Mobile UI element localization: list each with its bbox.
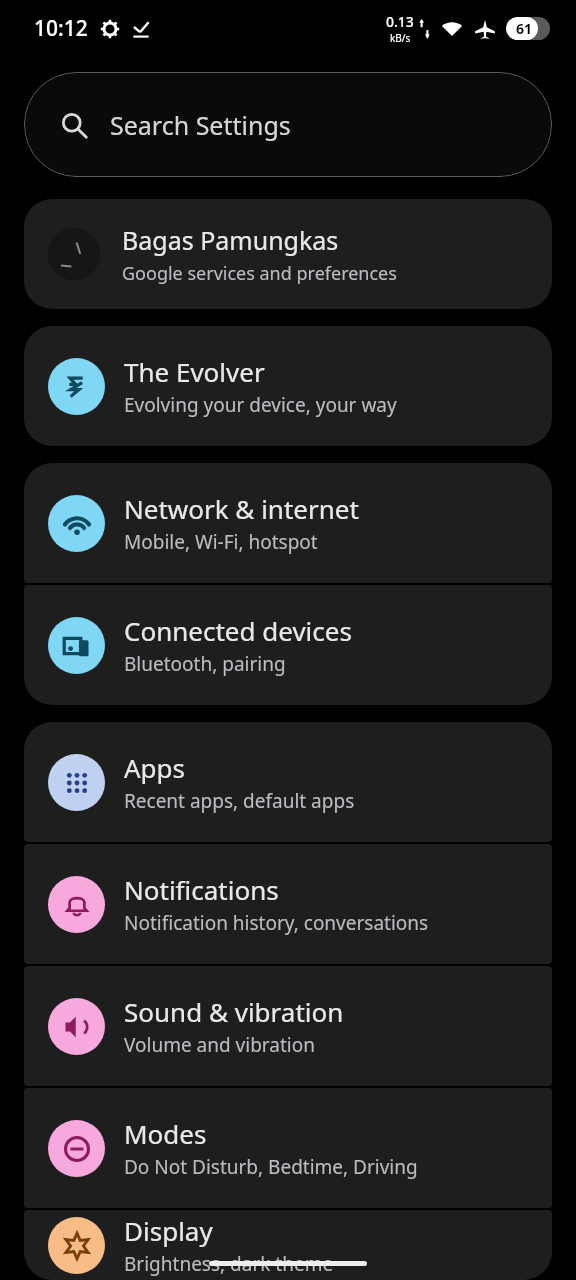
staticText: The Evolver xyxy=(124,354,265,389)
staticText: Notification history, conversations xyxy=(124,910,429,936)
staticText: Bluetooth, pairing xyxy=(124,651,286,677)
staticText: 10:12 xyxy=(34,14,88,43)
button[interactable]: Apps xyxy=(24,722,552,842)
button[interactable]: Modes xyxy=(24,1088,552,1208)
button[interactable]: Sound & vibration xyxy=(24,966,552,1086)
staticText: Bagas Pamungkas xyxy=(122,223,339,257)
button[interactable]: Notifications xyxy=(24,844,552,964)
staticText: Do Not Disturb, Bedtime, Driving xyxy=(124,1154,418,1180)
staticText: Search Settings xyxy=(110,108,291,142)
staticText: kB/s xyxy=(390,31,411,45)
staticText: Display xyxy=(124,1213,213,1248)
staticText: Brightness, dark theme xyxy=(124,1251,334,1277)
staticText: Recent apps, default apps xyxy=(124,788,355,814)
button[interactable]: The Evolver xyxy=(24,326,552,446)
other: Search xyxy=(60,111,88,139)
staticText: Notifications xyxy=(124,872,279,907)
staticText: Google services and preferences xyxy=(122,261,397,286)
button[interactable]: Network & internet xyxy=(24,463,552,583)
staticText: Volume and vibration xyxy=(124,1032,315,1058)
staticText: 0.13 xyxy=(386,12,414,31)
staticText: Sound & vibration xyxy=(124,994,344,1029)
button[interactable]: Connected devices xyxy=(24,585,552,705)
button[interactable]: Bagas Pamungkas xyxy=(24,199,552,309)
staticText: Connected devices xyxy=(124,613,352,648)
staticText: Mobile, Wi-Fi, hotspot xyxy=(124,529,318,555)
staticText: Modes xyxy=(124,1116,207,1151)
button[interactable]: Search xyxy=(24,72,552,177)
button[interactable]: Display xyxy=(24,1210,552,1280)
staticText: 61 xyxy=(516,19,533,38)
staticText: Evolving your device, your way xyxy=(124,392,397,418)
staticText: Network & internet xyxy=(124,491,359,526)
staticText: Apps xyxy=(124,750,186,785)
